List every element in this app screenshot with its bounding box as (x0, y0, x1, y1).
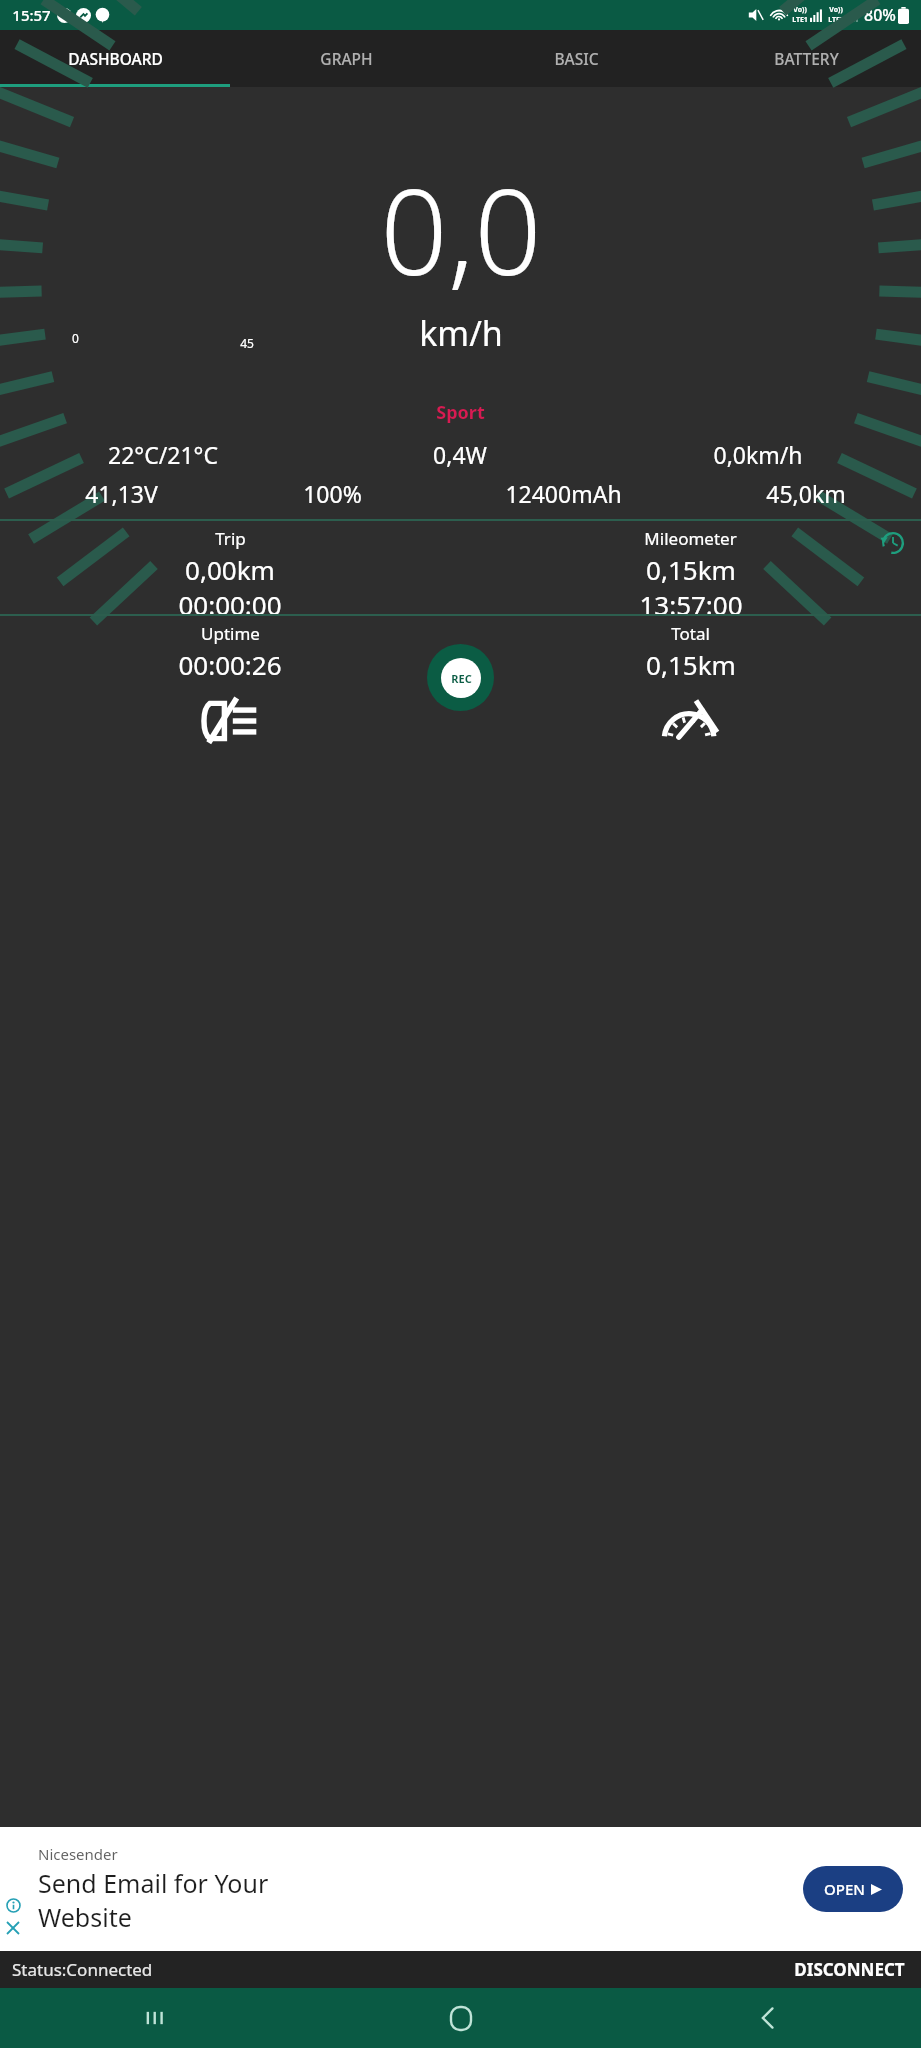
staticText: 00:00:26 (178, 647, 282, 682)
staticText: 0 (72, 330, 79, 346)
button[interactable]: DISCONNECT (790, 1954, 909, 1985)
staticText: Sport (436, 400, 485, 425)
staticText: 13:57:00 (639, 587, 743, 614)
staticText: km/h (419, 310, 503, 356)
staticText: BASIC (554, 48, 599, 69)
staticText: Vo)) (829, 5, 843, 15)
button[interactable]: Back (614, 1988, 921, 2048)
button[interactable]: Ad info (4, 1896, 22, 1914)
staticText: 45,0km (766, 478, 846, 509)
staticText: 0,4W (433, 439, 487, 470)
staticText: LTE2 (828, 15, 844, 25)
button[interactable]: OPEN (803, 1866, 903, 1912)
staticText: DISCONNECT (794, 1958, 905, 1981)
staticText: 00:00:00 (178, 587, 282, 614)
staticText: 0,0 (380, 149, 542, 310)
staticText: GRAPH (320, 48, 373, 69)
button[interactable]: Cruise control off (660, 698, 722, 742)
button[interactable]: Close ad (4, 1919, 22, 1937)
button[interactable]: BASIC (461, 30, 691, 87)
staticText: Status:Connected (12, 1958, 153, 1981)
button[interactable]: GRAPH (231, 30, 461, 87)
staticText: 12400mAh (505, 478, 622, 509)
staticText: 45 (240, 335, 254, 351)
staticText: Total (671, 622, 710, 645)
staticText: 41,13V (85, 478, 158, 509)
staticText: BATTERY (774, 48, 839, 69)
staticText: Vo)) (793, 5, 807, 15)
button[interactable]: Record (427, 644, 494, 711)
staticText: 0,0km/h (713, 439, 803, 470)
staticText: Send Email for Your (38, 1866, 803, 1900)
staticText: 0,00km (185, 552, 275, 587)
staticText: 80% (864, 4, 896, 26)
staticText: 0,15km (646, 647, 736, 682)
button[interactable]: Home (307, 1988, 614, 2048)
button[interactable]: Headlight off (202, 700, 258, 742)
staticText: Uptime (201, 622, 260, 645)
button[interactable]: History (877, 527, 909, 559)
staticText: LTE1 (792, 15, 808, 25)
staticText: OPEN (824, 1879, 865, 1899)
staticText: DASHBOARD (68, 48, 163, 69)
staticText: REC (451, 671, 472, 686)
staticText: Mileometer (644, 527, 737, 550)
staticText: 100% (303, 478, 362, 509)
button[interactable]: BATTERY (691, 30, 921, 87)
staticText: Trip (215, 527, 246, 550)
staticText: 0,15km (646, 552, 736, 587)
staticText: 15:57 (12, 5, 51, 25)
button[interactable]: Recents (0, 1988, 307, 2048)
button[interactable]: DASHBOARD (0, 30, 231, 87)
staticText: Nicesender (38, 1844, 803, 1864)
staticText: Website (38, 1900, 803, 1934)
staticText: 22°C/21°C (108, 439, 218, 470)
